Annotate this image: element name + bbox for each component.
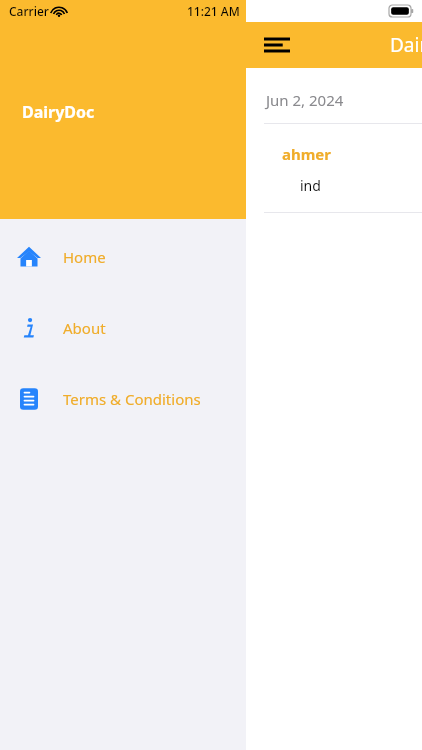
- button[interactable]: About: [0, 311, 246, 345]
- staticText: DairyDoc: [22, 101, 95, 123]
- staticText: Carrier: [9, 3, 49, 19]
- button[interactable]: Home: [0, 240, 246, 274]
- staticText: 11:21 AM: [187, 3, 240, 19]
- staticText: DairyDoc: [390, 32, 422, 58]
- button[interactable]: Terms & Conditions: [0, 382, 246, 416]
- staticText: Home: [63, 247, 106, 267]
- staticText: Terms & Conditions: [63, 389, 201, 409]
- staticText: About: [63, 318, 106, 338]
- button[interactable]: ahmer: [246, 124, 422, 212]
- staticText: ahmer: [282, 144, 332, 164]
- staticText: Jun 2, 2024: [266, 90, 344, 110]
- staticText: ind: [300, 176, 321, 195]
- button[interactable]: Open navigation menu: [256, 24, 298, 66]
